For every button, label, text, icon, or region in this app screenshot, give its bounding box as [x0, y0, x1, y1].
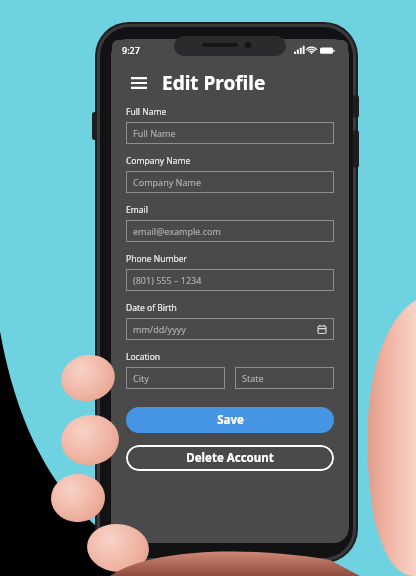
button[interactable]: Delete Account [126, 445, 334, 471]
staticText: Phone Number [126, 253, 187, 265]
staticText: Email [126, 204, 148, 216]
staticText: Company Name [133, 176, 202, 188]
button[interactable]: Company Name [126, 171, 334, 193]
staticText: City [133, 372, 149, 384]
staticText: 9:27 [122, 44, 140, 56]
button[interactable]: Open navigation menu [126, 70, 152, 96]
staticText: Edit Profile [162, 70, 266, 96]
staticText: Date of Birth [126, 302, 177, 314]
staticText: Company Name [126, 155, 191, 167]
staticText: Save [217, 412, 244, 428]
button[interactable]: (801) 555 – 1234 [126, 269, 334, 291]
button[interactable]: email@example.com [126, 220, 334, 242]
button[interactable]: mm/dd/yyyy [126, 318, 334, 340]
button[interactable]: Full Name [126, 122, 334, 144]
staticText: Full Name [126, 106, 167, 118]
staticText: Full Name [133, 127, 176, 139]
button[interactable]: Save [126, 407, 334, 433]
staticText: State [242, 372, 264, 384]
staticText: email@example.com [133, 225, 221, 237]
staticText: (801) 555 – 1234 [133, 274, 202, 286]
button[interactable]: State [235, 367, 334, 389]
staticText: mm/dd/yyyy [133, 323, 186, 335]
button[interactable]: City [126, 367, 225, 389]
staticText: Delete Account [186, 450, 274, 466]
staticText: Location [126, 351, 161, 363]
